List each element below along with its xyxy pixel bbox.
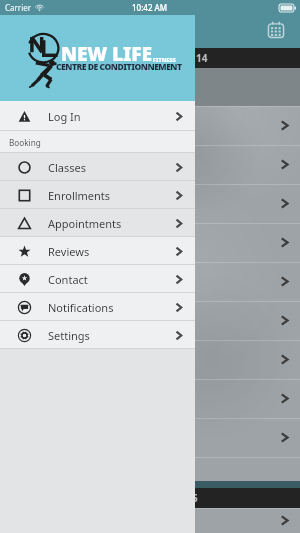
staticText: Settings xyxy=(48,328,90,343)
button[interactable]: Settings xyxy=(0,321,195,349)
button[interactable]: Appointments xyxy=(0,209,195,237)
button[interactable]: Log In xyxy=(0,101,195,131)
staticText: Booking xyxy=(9,137,41,148)
button[interactable]: Classes xyxy=(0,153,195,181)
button[interactable] xyxy=(0,418,300,457)
staticText: CENTRE DE CONDITIONNEMENT xyxy=(56,61,182,73)
button[interactable]: Contact xyxy=(0,265,195,293)
staticText: Contact xyxy=(48,272,88,287)
staticText: 10:42 AM xyxy=(132,2,168,13)
staticText: Notifications xyxy=(48,300,114,315)
button[interactable]: Calendar xyxy=(263,17,289,43)
staticText: 14 xyxy=(196,51,208,65)
button[interactable] xyxy=(0,340,300,379)
staticText: Reviews xyxy=(48,244,90,259)
button[interactable] xyxy=(0,223,300,262)
button[interactable]: Enrollments xyxy=(0,181,195,209)
button[interactable] xyxy=(0,301,300,340)
staticText: Appointments xyxy=(48,216,122,231)
staticText: FITNESS xyxy=(153,56,176,63)
button[interactable] xyxy=(0,262,300,301)
staticText: Enrollments xyxy=(48,188,111,203)
button[interactable] xyxy=(0,145,300,184)
button[interactable] xyxy=(0,379,300,418)
staticText: NEW LIFE xyxy=(61,40,152,66)
staticText: Log In xyxy=(48,109,81,124)
button[interactable] xyxy=(0,106,300,145)
staticText: Classes xyxy=(48,160,86,175)
button[interactable] xyxy=(0,184,300,223)
staticText: Carrier xyxy=(5,2,32,13)
staticText: 5 xyxy=(192,491,198,505)
button[interactable]: Reviews xyxy=(0,237,195,265)
button[interactable] xyxy=(0,508,300,533)
button[interactable]: Notifications xyxy=(0,293,195,321)
